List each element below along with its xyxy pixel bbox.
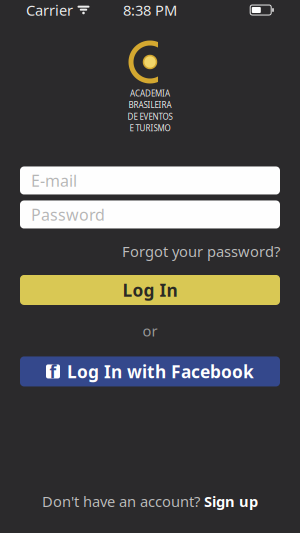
button[interactable]: Log In (20, 275, 280, 305)
staticText: Sign up (204, 491, 258, 511)
staticText: DE EVENTOS (127, 111, 172, 122)
staticText: E-mail (31, 170, 77, 191)
button[interactable]: Forgot your password? (122, 237, 280, 265)
staticText: 8:38 PM (123, 0, 177, 20)
staticText: Forgot your password? (122, 241, 280, 261)
staticText: E TURISMO (129, 123, 170, 133)
staticText: BRASILEIRA (128, 100, 171, 110)
staticText: Log In (122, 278, 177, 301)
staticText: f (49, 360, 56, 383)
staticText: Password (31, 204, 105, 225)
staticText: Log In with Facebook (67, 360, 254, 383)
staticText: Don't have an account? (42, 491, 200, 511)
staticText: Carrier (26, 0, 73, 20)
button[interactable]: Don't have an account? (42, 487, 258, 515)
staticText: ACADEMIA (130, 88, 170, 99)
button[interactable]: f (20, 356, 280, 386)
staticText: or (142, 321, 157, 340)
